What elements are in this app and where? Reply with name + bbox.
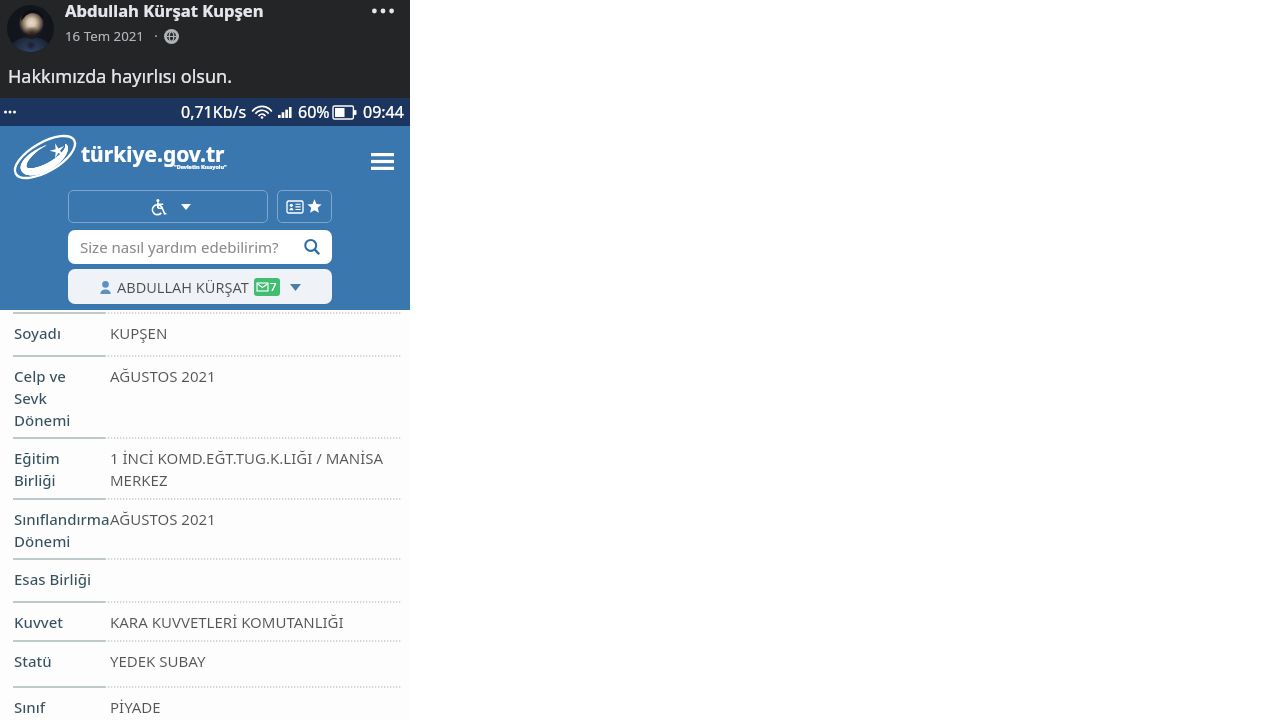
button[interactable]: ABDULLAH KÜRŞAT — [68, 269, 332, 304]
button[interactable]: Celp ve Sevk Dönemi — [0, 357, 410, 437]
button[interactable]: Esas Birliği — [0, 560, 410, 601]
staticText: 7 — [270, 279, 277, 295]
staticText: 16 Tem 2021 · — [65, 27, 158, 45]
button[interactable]: Sınıflandırma Dönemi — [0, 500, 410, 558]
staticText: türkiye.gov.tr — [81, 140, 225, 169]
staticText: Size nasıl yardım edebilirim? — [80, 237, 279, 257]
staticText: Sınıf — [14, 697, 46, 717]
staticText: Sınıflandırma Dönemi — [14, 509, 110, 552]
button[interactable]: türkiye.gov.tr — [81, 140, 225, 169]
staticText: 1 İNCİ KOMD.EĞT.TUG.K.LIĞI / MANİSA MERK… — [110, 448, 402, 491]
button[interactable]: e-Devlet Kapısı home — [11, 134, 79, 180]
button[interactable]: ID card and favourites — [277, 190, 332, 223]
staticText: PİYADE — [110, 697, 161, 717]
staticText: Soyadı — [14, 323, 61, 343]
button[interactable]: Profile photo — [7, 5, 54, 52]
button[interactable]: Soyadı — [0, 314, 410, 355]
staticText: AĞUSTOS 2021 — [110, 509, 216, 529]
staticText: YEDEK SUBAY — [110, 651, 206, 671]
button[interactable]: Size nasıl yardım edebilirim? — [68, 230, 332, 264]
staticText: KUPŞEN — [110, 323, 168, 343]
staticText: ABDULLAH KÜRŞAT — [117, 277, 249, 297]
staticText: AĞUSTOS 2021 — [110, 366, 216, 386]
button[interactable]: Search — [302, 237, 322, 257]
button[interactable]: Accessibility options — [68, 190, 268, 223]
button[interactable]: Sınıf — [0, 688, 410, 720]
staticText: Statü — [14, 651, 52, 671]
staticText: 0,71Kb/s — [181, 101, 247, 123]
staticText: Hakkımızda hayırlısı olsun. — [8, 64, 233, 89]
staticText: Kuvvet — [14, 612, 64, 632]
button[interactable]: Kuvvet — [0, 603, 410, 640]
staticText: "Devletin Kısayolu" — [174, 163, 227, 170]
button[interactable]: Eğitim Birliği — [0, 439, 410, 498]
staticText: Esas Birliği — [14, 569, 92, 589]
staticText: Eğitim Birliği — [14, 448, 60, 491]
staticText: 09:44 — [363, 101, 404, 123]
staticText: Celp ve Sevk Dönemi — [14, 366, 71, 431]
button[interactable]: Menu — [366, 145, 398, 177]
button[interactable]: More options — [361, 0, 405, 22]
staticText: Abdullah Kürşat Kupşen — [65, 0, 264, 22]
staticText: KARA KUVVETLERİ KOMUTANLIĞI — [110, 612, 344, 632]
staticText: 60% — [298, 101, 330, 123]
button[interactable]: Statü — [0, 642, 410, 686]
